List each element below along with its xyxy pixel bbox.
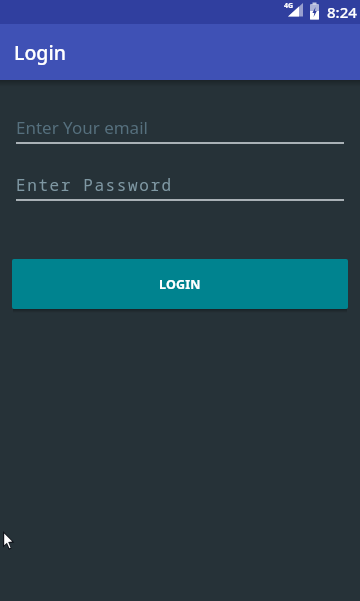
staticText: 4G [284, 1, 294, 11]
staticText: 8:24 [327, 2, 357, 22]
button[interactable]: Enter Password [16, 170, 344, 203]
staticText: LOGIN [159, 276, 201, 293]
button[interactable]: LOGIN [12, 259, 348, 309]
staticText: Enter Password [16, 174, 173, 196]
button[interactable]: Enter Your email [16, 112, 344, 146]
staticText: Login [14, 39, 66, 66]
staticText: Enter Your email [16, 116, 148, 139]
